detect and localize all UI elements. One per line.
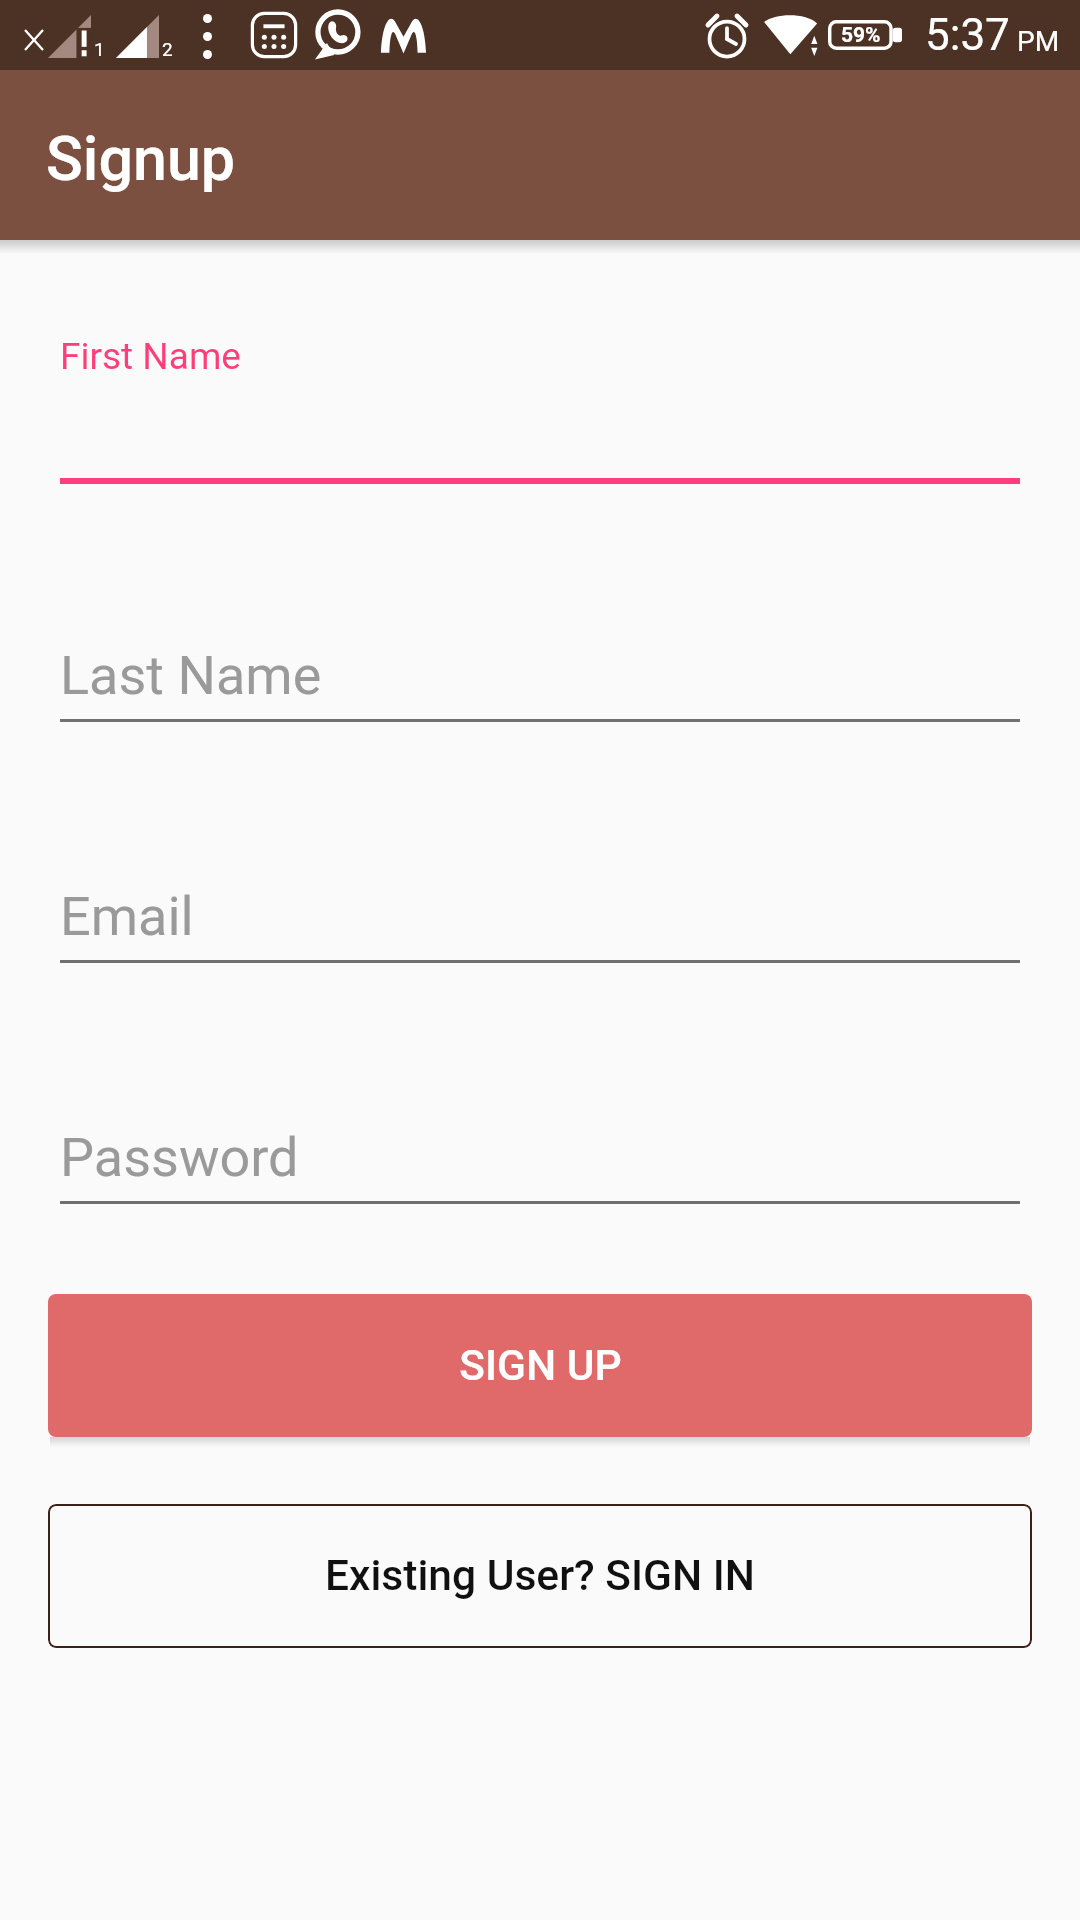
staticText: 1	[94, 38, 105, 60]
other: WhatsApp	[314, 10, 360, 60]
button[interactable]: Password	[60, 1106, 1020, 1204]
staticText: 59%	[841, 23, 881, 48]
staticText: Signup	[46, 123, 236, 194]
staticText: SIGN UP	[459, 1341, 622, 1391]
other: Alarm	[702, 10, 752, 60]
other: Myntra	[380, 13, 427, 54]
button[interactable]: First Name	[60, 320, 1020, 484]
other: Calculator	[251, 12, 297, 58]
other: Close	[25, 30, 43, 50]
button[interactable]: Last Name	[60, 624, 1020, 722]
other: Wi-Fi	[763, 11, 820, 57]
staticText: 5:37	[925, 9, 1010, 61]
button[interactable]: SIGN UP	[48, 1294, 1032, 1437]
staticText: Last Name	[60, 644, 322, 707]
staticText: Existing User? SIGN IN	[325, 1551, 755, 1601]
other: More options	[203, 14, 212, 59]
staticText: Password	[60, 1126, 299, 1189]
staticText: 2	[162, 38, 173, 60]
staticText: PM	[1017, 25, 1060, 58]
button[interactable]: Existing User? SIGN IN	[48, 1504, 1032, 1648]
staticText: First Name	[60, 335, 241, 378]
button[interactable]: Email	[60, 865, 1020, 963]
staticText: Email	[60, 885, 194, 948]
